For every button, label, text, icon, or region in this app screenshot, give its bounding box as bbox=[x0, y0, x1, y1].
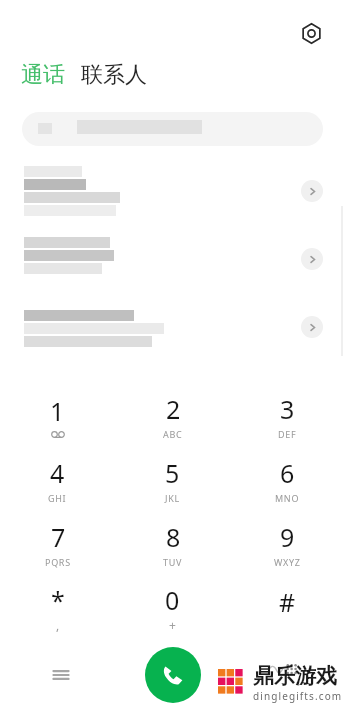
staticText: # bbox=[279, 585, 296, 619]
staticText: 7 bbox=[51, 520, 66, 554]
button[interactable]: Call details bbox=[301, 180, 323, 202]
staticText: 9 bbox=[280, 520, 295, 554]
staticText: GHI bbox=[48, 492, 67, 504]
button[interactable]: 3 bbox=[230, 384, 345, 448]
staticText: 2 bbox=[166, 392, 181, 426]
button[interactable]: 0 bbox=[115, 576, 230, 640]
staticText: dinglegifts.com bbox=[253, 689, 343, 703]
button[interactable]: Menu bbox=[44, 658, 78, 692]
button[interactable]: Call details bbox=[301, 316, 323, 338]
button[interactable]: Switch input method bbox=[265, 649, 305, 689]
button[interactable]: 6 bbox=[230, 448, 345, 512]
button[interactable]: 通话 bbox=[18, 58, 68, 92]
staticText: 6 bbox=[280, 456, 295, 490]
staticText: 4 bbox=[50, 456, 65, 490]
staticText: ABC bbox=[163, 428, 183, 440]
staticText: 联系人 bbox=[81, 61, 147, 89]
staticText: 8 bbox=[166, 520, 181, 554]
staticText: 3 bbox=[280, 392, 295, 426]
staticText: 0 bbox=[165, 583, 180, 617]
button[interactable]: Call entry 1 bbox=[0, 166, 345, 218]
button[interactable]: 7 bbox=[0, 512, 115, 576]
button[interactable]: 9 bbox=[230, 512, 345, 576]
staticText: 鼎乐游戏 bbox=[253, 663, 337, 689]
button[interactable]: Settings bbox=[298, 20, 324, 46]
staticText: MNO bbox=[275, 492, 300, 504]
button[interactable]: Call bbox=[145, 647, 201, 703]
staticText: PQRS bbox=[45, 556, 71, 568]
staticText: JKL bbox=[165, 492, 180, 504]
staticText: * bbox=[51, 583, 65, 617]
button[interactable]: 8 bbox=[115, 512, 230, 576]
button[interactable]: 5 bbox=[115, 448, 230, 512]
staticText: 1 bbox=[50, 394, 65, 428]
staticText: 通话 bbox=[21, 61, 65, 89]
button[interactable]: * bbox=[0, 576, 115, 640]
staticText: + bbox=[169, 617, 176, 633]
staticText: 5 bbox=[165, 456, 180, 490]
button[interactable]: 4 bbox=[0, 448, 115, 512]
button[interactable]: Search contacts bbox=[22, 112, 323, 146]
button[interactable]: Call entry 3 bbox=[0, 310, 345, 362]
staticText: DEF bbox=[278, 428, 297, 440]
button[interactable]: 2 bbox=[115, 384, 230, 448]
button[interactable]: 联系人 bbox=[78, 58, 150, 92]
button[interactable]: # bbox=[230, 576, 345, 640]
button[interactable]: Call entry 2 bbox=[0, 237, 345, 289]
staticText: WXYZ bbox=[274, 556, 301, 568]
staticText: TUV bbox=[163, 556, 183, 568]
staticText: , bbox=[56, 617, 60, 633]
button[interactable]: 1 bbox=[0, 384, 115, 448]
button[interactable]: Call details bbox=[301, 248, 323, 270]
